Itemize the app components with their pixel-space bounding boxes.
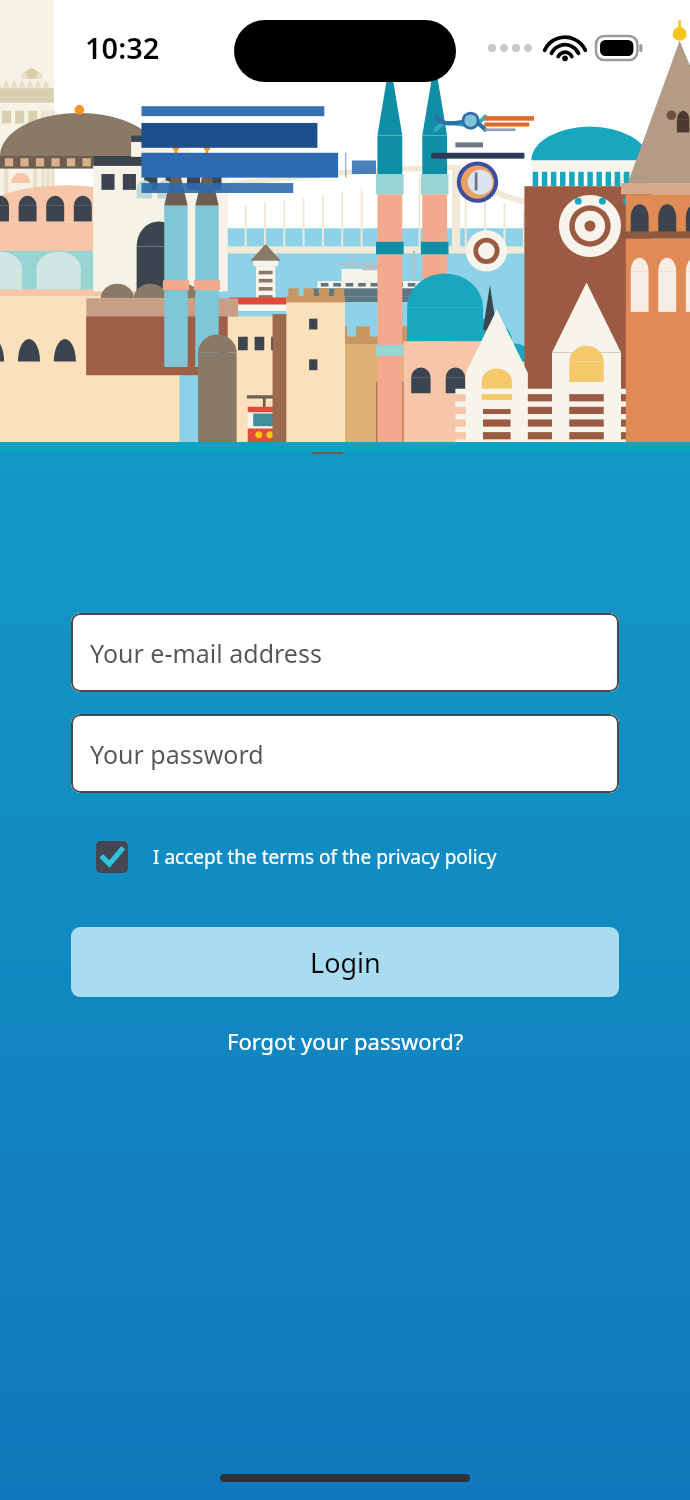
staticText: 10:32 (85, 28, 160, 67)
button[interactable]: Login (71, 927, 619, 997)
button[interactable]: Forgot your password? (71, 1026, 619, 1056)
staticText: I accept the terms of the privacy policy (153, 844, 497, 870)
staticText: Your password (90, 737, 264, 771)
staticText: Login (310, 944, 381, 981)
button[interactable]: Your password (71, 714, 619, 793)
button[interactable]: Your e-mail address (71, 613, 619, 692)
staticText: Forgot your password? (227, 1026, 464, 1056)
staticText: Your e-mail address (90, 636, 322, 670)
button[interactable]: I accept the terms of the privacy policy (71, 841, 619, 873)
